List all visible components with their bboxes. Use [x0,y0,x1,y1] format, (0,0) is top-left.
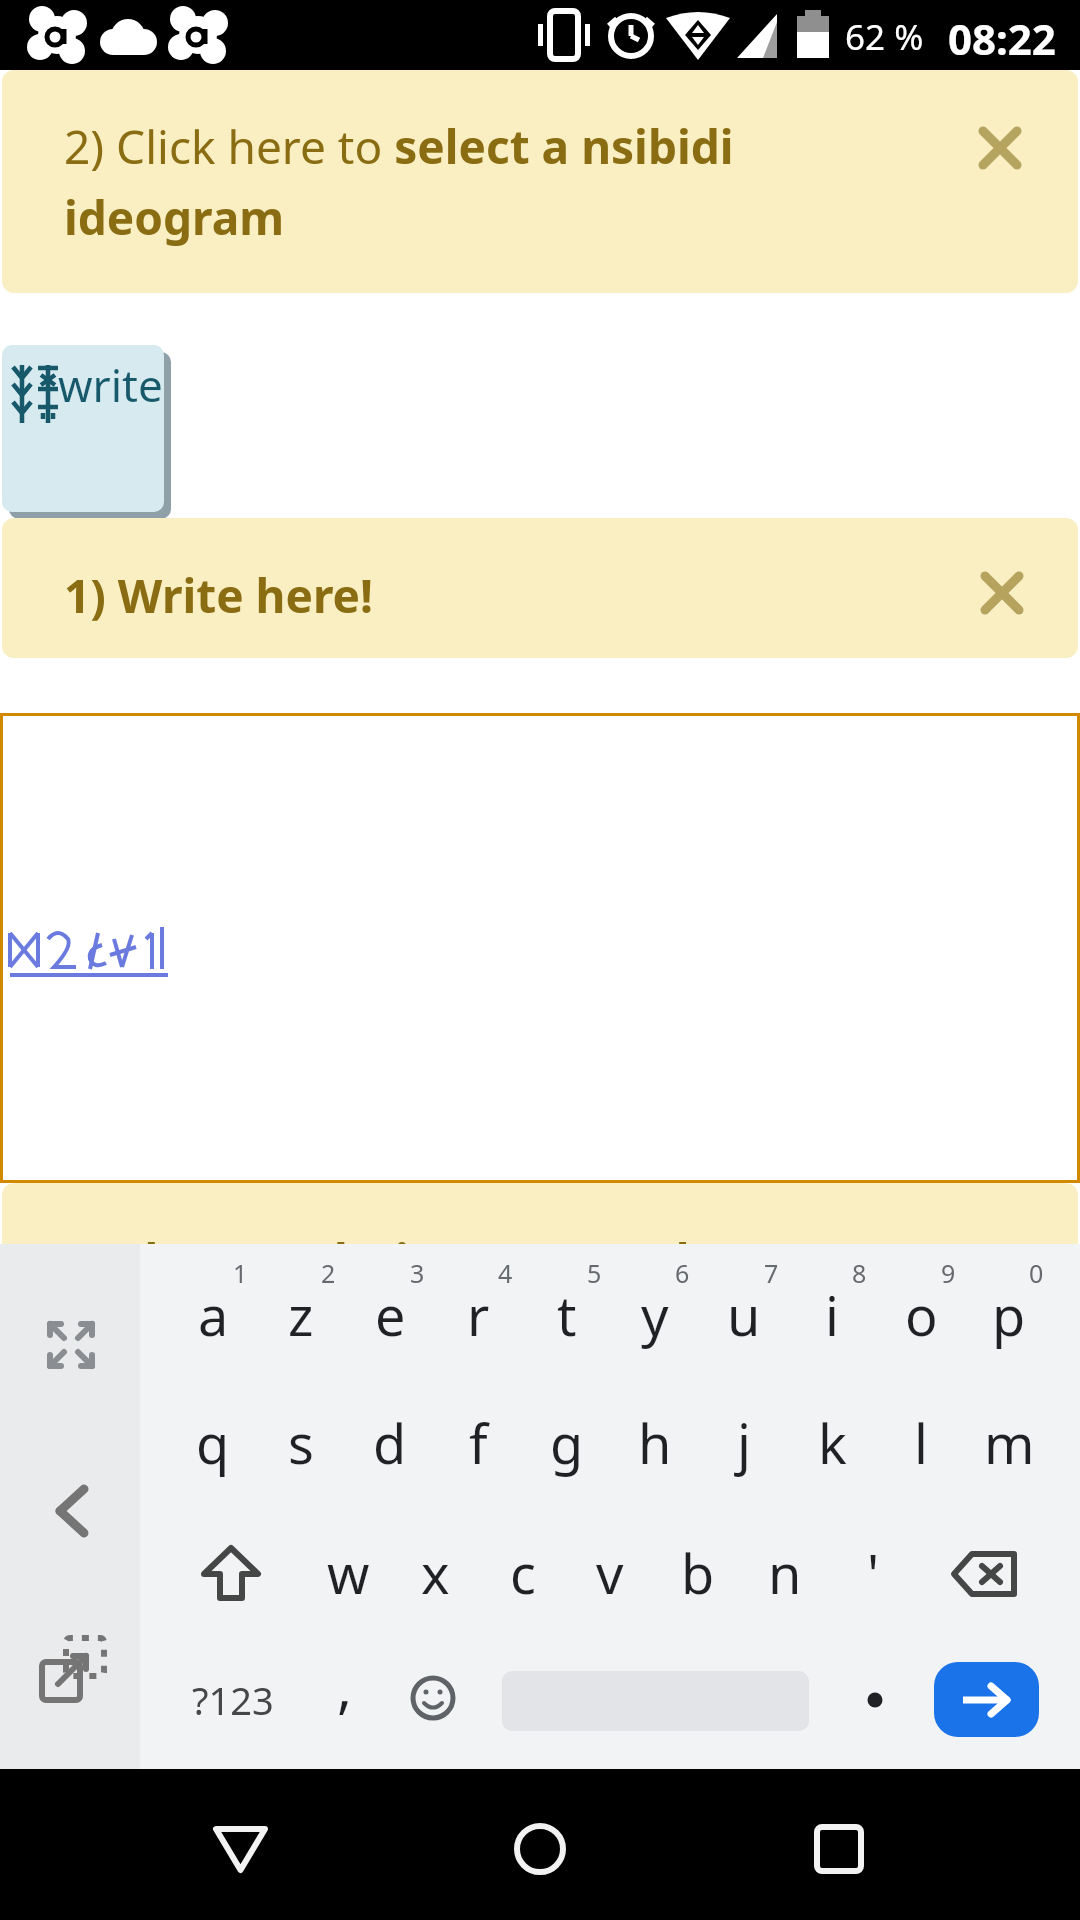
staticText: ?123 [192,1674,274,1726]
staticText: 8 [852,1256,867,1290]
staticText: k [818,1406,847,1480]
staticText: 5 [587,1256,602,1290]
staticText: y [641,1278,669,1352]
button[interactable] [982,573,1022,613]
button[interactable] [42,1638,104,1700]
button[interactable]: a [168,1270,258,1360]
staticText: 3) The translation appears here! [64,1229,794,1292]
button[interactable] [835,1660,915,1740]
button[interactable] [814,1824,864,1874]
staticText: 2 [321,1256,336,1290]
staticText: 4 [498,1256,513,1290]
button[interactable] [46,1320,96,1370]
staticText: m [984,1406,1035,1480]
staticText: o [905,1278,938,1352]
button[interactable]: c [478,1528,568,1618]
staticText: i [825,1278,839,1352]
button[interactable]: i [787,1270,877,1360]
staticText: write [58,355,163,415]
staticText: w [327,1536,370,1610]
button[interactable]: z [256,1270,346,1360]
button[interactable]: n [740,1528,830,1618]
button[interactable] [980,128,1020,168]
staticText: ' [867,1536,880,1610]
staticText: z [288,1278,314,1352]
staticText: u [727,1278,761,1352]
button[interactable]: u [699,1270,789,1360]
staticText: q [196,1406,230,1480]
button[interactable] [411,1676,455,1720]
staticText: x [421,1536,450,1610]
staticText: e [375,1278,406,1352]
staticText: 08:22 [948,10,1056,67]
button[interactable]: ' [828,1528,918,1618]
button[interactable]: p [964,1270,1054,1360]
button[interactable]: h [610,1398,700,1488]
button[interactable] [0,713,1080,1183]
button[interactable]: k [787,1398,877,1488]
button[interactable]: v [565,1528,655,1618]
staticText: r [467,1278,490,1352]
button[interactable] [934,1662,1039,1737]
staticText: 1 [233,1256,248,1290]
button[interactable] [213,1826,268,1873]
staticText: 7 [764,1256,779,1290]
staticText: 0 [1029,1256,1044,1290]
staticText: j [737,1406,751,1480]
button[interactable]: o [876,1270,966,1360]
staticText: h [638,1406,672,1480]
button[interactable]: q [168,1398,258,1488]
staticText: d [373,1406,407,1480]
button[interactable]: , [305,1660,385,1740]
button[interactable]: b [653,1528,743,1618]
staticText: 1) Write here! [64,564,374,627]
button[interactable]: s [256,1398,346,1488]
button[interactable] [202,1546,260,1600]
staticText: s [288,1406,314,1480]
staticText: , [337,1648,353,1724]
staticText: 9 [941,1256,956,1290]
button[interactable]: m [964,1398,1054,1488]
staticText: l [914,1406,928,1480]
button[interactable]: x [390,1528,480,1618]
staticText: 2) Click here to select a nsibidi ideogr… [64,115,764,248]
button[interactable]: f [433,1398,523,1488]
button[interactable]: y [610,1270,700,1360]
staticText: 3 [410,1256,425,1290]
staticText: f [469,1406,488,1480]
button[interactable]: r [433,1270,523,1360]
button[interactable]: 2) Click here to select a nsibidi ideogr… [2,70,1078,293]
button[interactable]: t [522,1270,612,1360]
button[interactable]: ?123 [175,1670,290,1730]
staticText: a [198,1278,229,1352]
staticText: b [681,1536,715,1610]
staticText: p [992,1278,1026,1352]
staticText: v [596,1536,624,1610]
button[interactable]: w [303,1528,393,1618]
button[interactable] [514,1823,566,1875]
button[interactable]: 1) Write here! [2,518,1078,658]
staticText: c [510,1536,536,1610]
button[interactable]: write [2,345,164,512]
button[interactable]: l [876,1398,966,1488]
button[interactable]: g [522,1398,612,1488]
button[interactable] [54,1487,90,1535]
staticText: g [550,1406,584,1480]
staticText: 62 % [845,13,924,61]
staticText: 6 [675,1256,690,1290]
button[interactable]: d [345,1398,435,1488]
button[interactable]: e [345,1270,435,1360]
button[interactable]: j [699,1398,789,1488]
staticText: n [768,1536,802,1610]
button[interactable] [952,1552,1018,1596]
staticText: t [557,1278,577,1352]
